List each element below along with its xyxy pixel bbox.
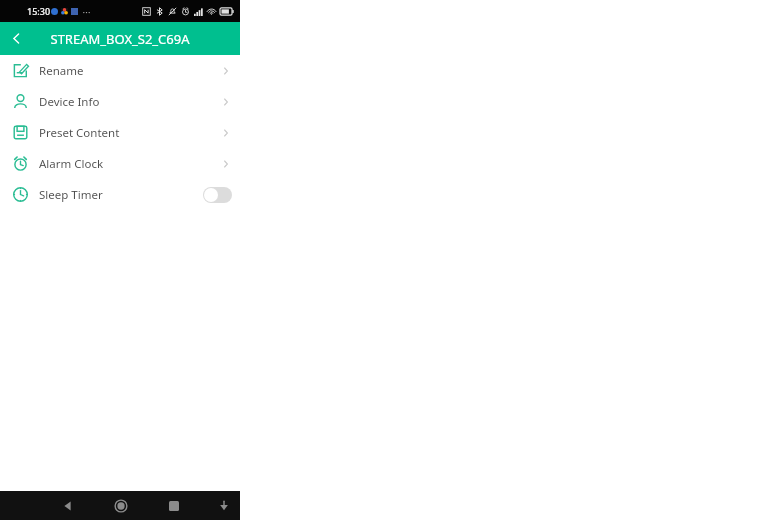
button[interactable]: Device Info bbox=[0, 86, 240, 117]
staticText: Alarm Clock bbox=[39, 156, 104, 172]
button[interactable]: Back bbox=[52, 491, 84, 520]
button[interactable]: Hide keyboard bbox=[208, 491, 240, 520]
staticText: Sleep Timer bbox=[39, 187, 103, 203]
button[interactable]: Home bbox=[105, 491, 137, 520]
staticText: Preset Content bbox=[39, 125, 120, 141]
button[interactable]: Sleep Timer toggle bbox=[203, 187, 232, 203]
button[interactable]: Recent apps bbox=[158, 491, 190, 520]
button[interactable]: Sleep Timer bbox=[0, 179, 240, 210]
button[interactable]: Alarm Clock bbox=[0, 148, 240, 179]
button[interactable]: Rename bbox=[0, 55, 240, 86]
button[interactable]: Back bbox=[0, 22, 33, 55]
staticText: Rename bbox=[39, 63, 84, 79]
staticText: 15:30 bbox=[27, 5, 51, 17]
staticText: Device Info bbox=[39, 94, 100, 110]
staticText: STREAM_BOX_S2_C69A bbox=[50, 30, 190, 48]
button[interactable]: Preset Content bbox=[0, 117, 240, 148]
